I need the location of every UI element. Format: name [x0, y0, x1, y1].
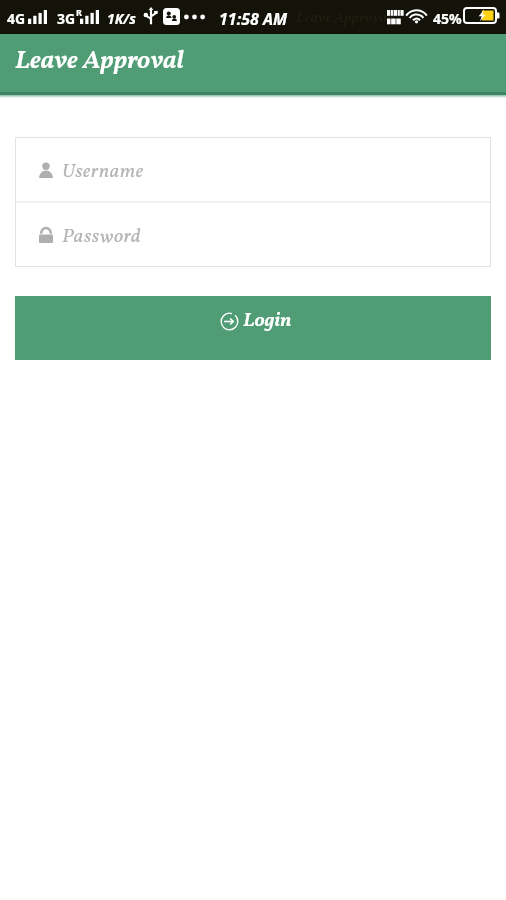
staticText: Password [62, 223, 142, 251]
button[interactable]: Login [15, 296, 491, 360]
staticText: Leave Approval [296, 9, 392, 29]
button[interactable]: Password [39, 202, 491, 267]
staticText: 45% [433, 9, 462, 28]
other: Login [220, 312, 239, 331]
staticText: R [76, 6, 82, 18]
staticText: 4G [7, 9, 26, 28]
staticText: 11:58 AM [219, 8, 288, 30]
staticText: 3G [57, 9, 76, 28]
staticText: Username [62, 158, 144, 186]
staticText: Login [243, 307, 292, 335]
button[interactable]: Username [39, 137, 491, 202]
staticText: Leave Approval [15, 43, 184, 79]
staticText: 1K/s [107, 9, 136, 28]
